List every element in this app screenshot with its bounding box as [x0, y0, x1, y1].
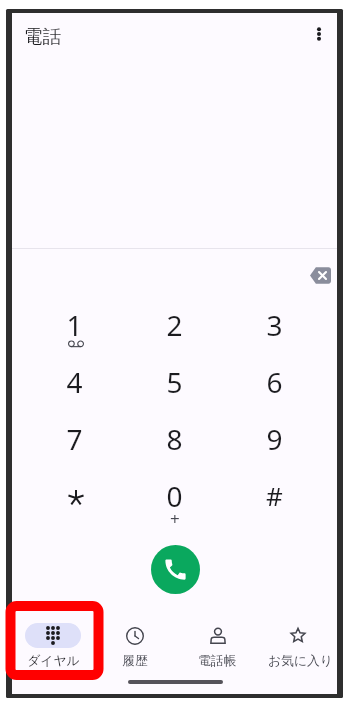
staticText: 8	[166, 420, 183, 458]
staticText: 5	[166, 363, 183, 401]
button[interactable]: 4	[24, 353, 124, 410]
button[interactable]: 9	[224, 410, 324, 467]
staticText: 3	[266, 306, 283, 344]
button[interactable]: More options	[299, 14, 339, 54]
staticText: 履歴	[122, 653, 148, 669]
staticText: お気に入り	[268, 653, 333, 669]
staticText: #	[266, 478, 283, 513]
button[interactable]: Call	[151, 545, 200, 594]
staticText: 2	[166, 306, 183, 344]
button[interactable]: 0	[124, 467, 224, 524]
button[interactable]: 履歴	[94, 608, 176, 680]
button[interactable]: お気に入り	[259, 608, 342, 680]
staticText: +	[170, 507, 180, 530]
staticText: ダイヤル	[27, 653, 80, 669]
staticText: 9	[266, 420, 283, 458]
button[interactable]: Delete	[299, 254, 341, 296]
button[interactable]	[24, 467, 124, 524]
staticText: 0	[166, 477, 183, 515]
button[interactable]: 7	[24, 410, 124, 467]
button[interactable]: ダイヤル	[12, 608, 94, 680]
staticText: 電話帳	[198, 653, 237, 669]
staticText: 4	[66, 363, 83, 401]
button[interactable]: 電話帳	[176, 608, 259, 680]
button[interactable]: #	[224, 467, 324, 524]
staticText: 1	[66, 306, 83, 344]
button[interactable]: 2	[124, 296, 224, 353]
staticText: 6	[266, 363, 283, 401]
button[interactable]: 6	[224, 353, 324, 410]
staticText: 7	[66, 420, 83, 458]
button[interactable]: 5	[124, 353, 224, 410]
button[interactable]: 8	[124, 410, 224, 467]
button[interactable]: 3	[224, 296, 324, 353]
button[interactable]: 1	[24, 296, 124, 353]
staticText: 電話	[24, 25, 61, 48]
